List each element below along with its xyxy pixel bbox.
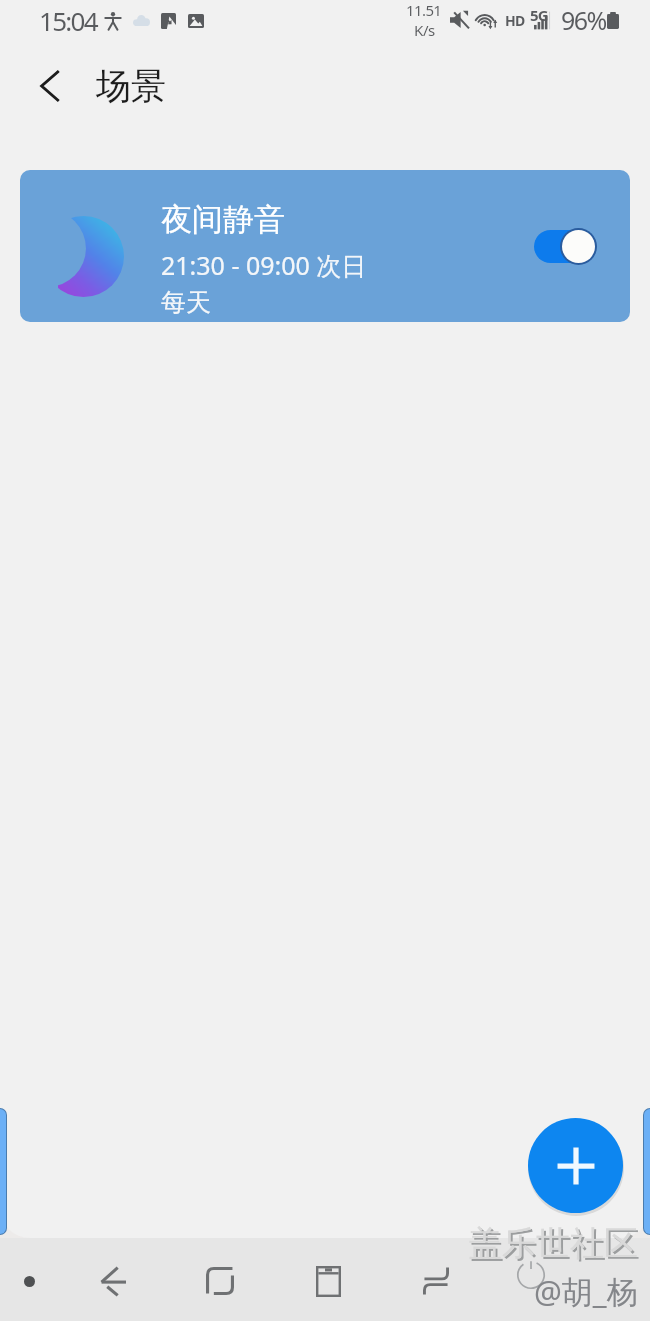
button[interactable]: Add scene <box>528 1118 623 1213</box>
button[interactable]: Back <box>63 1244 163 1318</box>
button[interactable]: 夜间静音 <box>20 170 630 322</box>
staticText: 21:30 - 09:00 次日 <box>161 248 367 282</box>
staticText: K/s <box>414 20 435 40</box>
staticText: 盖乐世社区 <box>470 1224 640 1267</box>
staticText: 96% <box>561 3 606 37</box>
staticText: 11.51 <box>406 0 442 20</box>
button[interactable]: Recent apps <box>278 1244 378 1318</box>
button[interactable]: Switch app <box>386 1244 486 1318</box>
button[interactable]: Home <box>170 1244 270 1318</box>
button[interactable]: Toggle night mute scene <box>534 226 598 266</box>
staticText: 每天 <box>161 287 211 318</box>
staticText: 盖乐世社区 <box>468 1222 638 1265</box>
staticText: 场景 <box>96 64 166 108</box>
button[interactable]: Back <box>22 58 78 114</box>
staticText: 夜间静音 <box>161 200 285 239</box>
staticText: @胡_杨 <box>534 1270 638 1312</box>
staticText: 5G <box>530 5 548 25</box>
staticText: 15:04 <box>39 3 97 38</box>
staticText: HD <box>505 11 525 30</box>
